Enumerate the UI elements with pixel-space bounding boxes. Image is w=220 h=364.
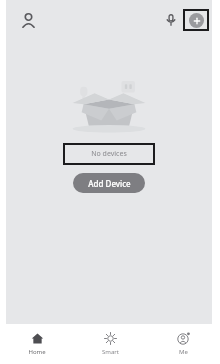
staticText: No devices (91, 149, 127, 159)
button[interactable]: Smart (74, 324, 147, 364)
staticText: Smart (102, 348, 119, 356)
staticText: Add Device (88, 178, 131, 189)
button[interactable]: Voice search (160, 9, 182, 31)
button[interactable]: Home (0, 324, 74, 364)
button[interactable]: Add Device (73, 173, 145, 193)
button[interactable]: No devices (63, 143, 155, 165)
staticText: Me (179, 348, 188, 356)
button[interactable]: Account (15, 7, 41, 33)
staticText: Home (28, 348, 46, 356)
button[interactable]: Add (183, 9, 209, 31)
button[interactable]: Me (147, 324, 220, 364)
